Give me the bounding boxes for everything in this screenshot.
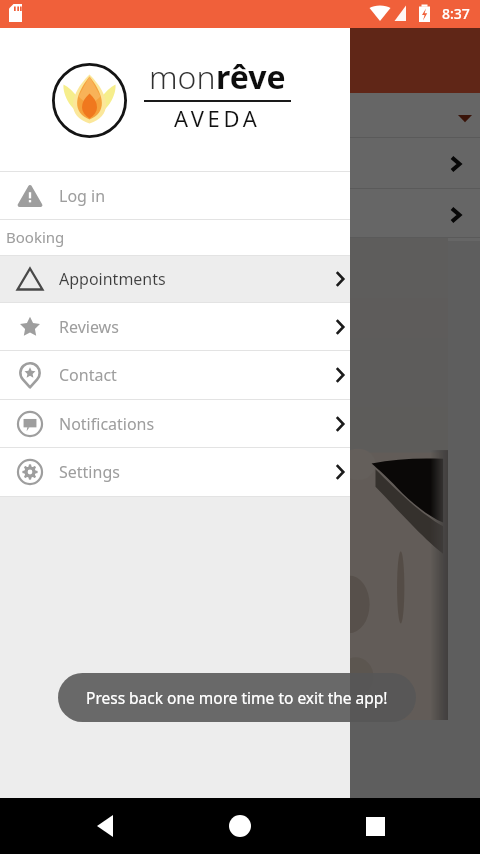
staticText: Reviews <box>59 316 119 338</box>
staticText: mon <box>149 55 216 99</box>
button[interactable]: Contact <box>0 351 350 399</box>
staticText: 8:37 <box>442 4 470 23</box>
staticText: Log in <box>59 185 106 207</box>
staticText: Notifications <box>59 413 155 435</box>
button[interactable]: Settings <box>0 448 350 496</box>
staticText: Booking <box>6 227 65 247</box>
button[interactable]: Appointments <box>0 256 350 302</box>
button[interactable]: Notifications <box>0 400 350 447</box>
staticText: Settings <box>59 461 120 483</box>
button[interactable]: Log in <box>0 172 350 219</box>
staticText: Appointments <box>59 268 166 290</box>
staticText: Contact <box>59 364 117 386</box>
staticText: Press back one more time to exit the app… <box>86 687 388 708</box>
staticText: AVEDA <box>174 103 261 133</box>
button[interactable]: Reviews <box>0 303 350 350</box>
staticText: rêve <box>216 55 286 99</box>
